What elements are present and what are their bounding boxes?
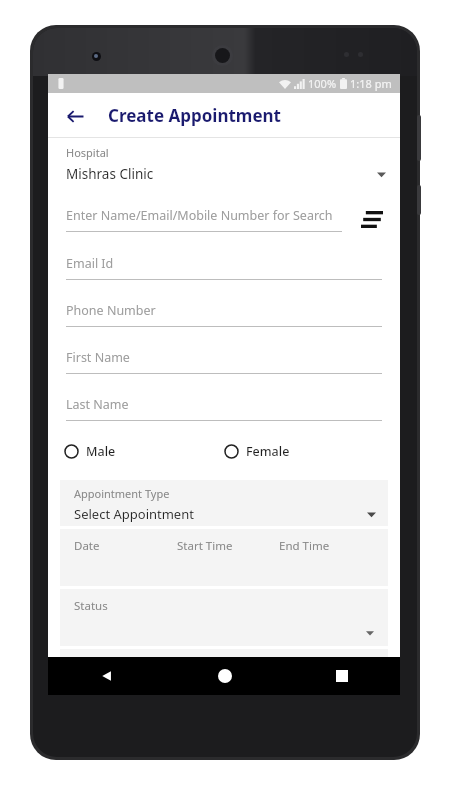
button[interactable]: Male [64, 439, 224, 464]
button[interactable]: Back [56, 97, 94, 135]
staticText: Last Name [66, 396, 129, 413]
button[interactable]: Appointment Type [60, 480, 388, 526]
staticText: Female [246, 443, 290, 460]
staticText: Select Appointment [74, 505, 367, 523]
button[interactable]: Last Name [48, 396, 400, 421]
button[interactable]: Filter [356, 203, 388, 235]
staticText: Enter Name/Email/Mobile Number for Searc… [66, 207, 333, 224]
button[interactable]: Recent apps [283, 657, 400, 695]
staticText: Date [74, 538, 177, 554]
staticText: Start Time [177, 538, 279, 554]
button[interactable]: Phone Number [48, 302, 400, 327]
button[interactable]: First Name [48, 349, 400, 374]
staticText: End Time [279, 538, 376, 554]
button[interactable]: Enter Name/Email/Mobile Number for Searc… [66, 207, 342, 232]
button[interactable]: Back [48, 657, 166, 695]
staticText: Hospital [66, 145, 109, 160]
staticText: Status [74, 598, 108, 614]
button[interactable]: Email Id [48, 255, 400, 280]
staticText: Email Id [66, 255, 114, 272]
button[interactable]: Status [60, 589, 388, 646]
button[interactable]: Home [166, 657, 283, 695]
staticText: Appointment Type [74, 486, 170, 501]
staticText: Male [86, 443, 116, 460]
button[interactable]: Date [60, 529, 388, 586]
button[interactable]: Hospital [48, 145, 400, 183]
staticText: Mishras Clinic [66, 165, 377, 183]
staticText: 1:18 pm [350, 76, 392, 91]
staticText: Phone Number [66, 302, 156, 319]
button[interactable]: Female [224, 439, 384, 464]
staticText: First Name [66, 349, 130, 366]
staticText: Create Appointment [108, 104, 281, 127]
staticText: 100% [308, 76, 337, 91]
